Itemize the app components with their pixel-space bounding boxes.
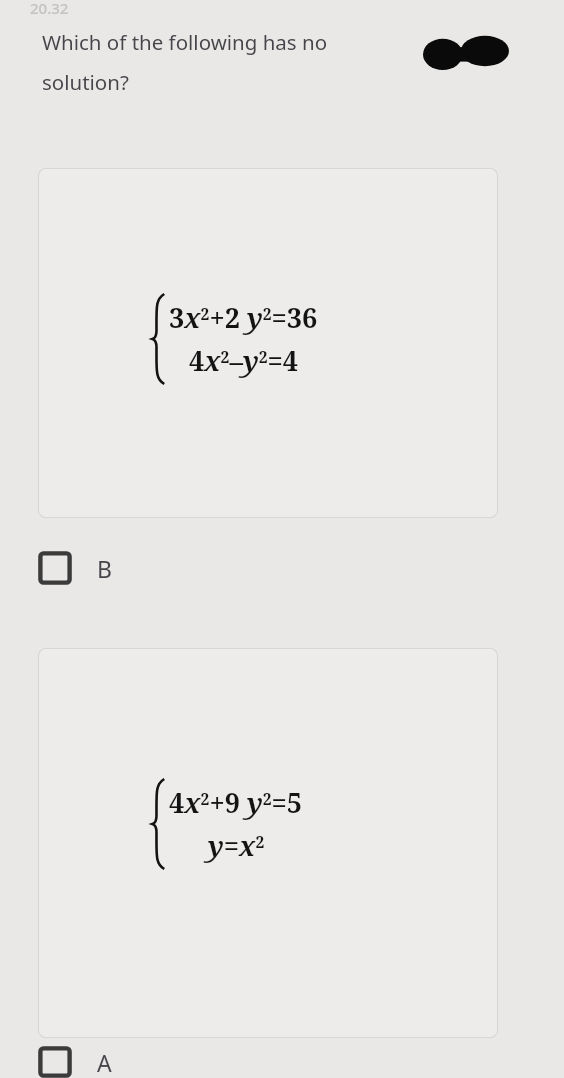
staticText: solution? [42, 68, 129, 96]
staticText: 4x2+9 y2=5 [169, 784, 303, 821]
button[interactable]: 3x2+2 y2=36 [38, 168, 498, 518]
staticText: Which of the following has no [42, 28, 328, 56]
other: Redacted [423, 35, 509, 73]
staticText: y=x2 [208, 827, 265, 864]
staticText: A [97, 1047, 112, 1078]
staticText: 3x2+2 y2=36 [169, 299, 318, 336]
staticText: B [97, 553, 112, 584]
button[interactable]: Select option A [0, 1046, 564, 1078]
button[interactable]: 4x2+9 y2=5 [38, 648, 498, 1038]
other: Select option B [38, 551, 72, 585]
staticText: 4x2–y2=4 [189, 342, 299, 379]
other: Select option A [38, 1046, 72, 1078]
button[interactable]: Select option B [0, 543, 564, 593]
staticText: 20.32 [30, 0, 69, 18]
